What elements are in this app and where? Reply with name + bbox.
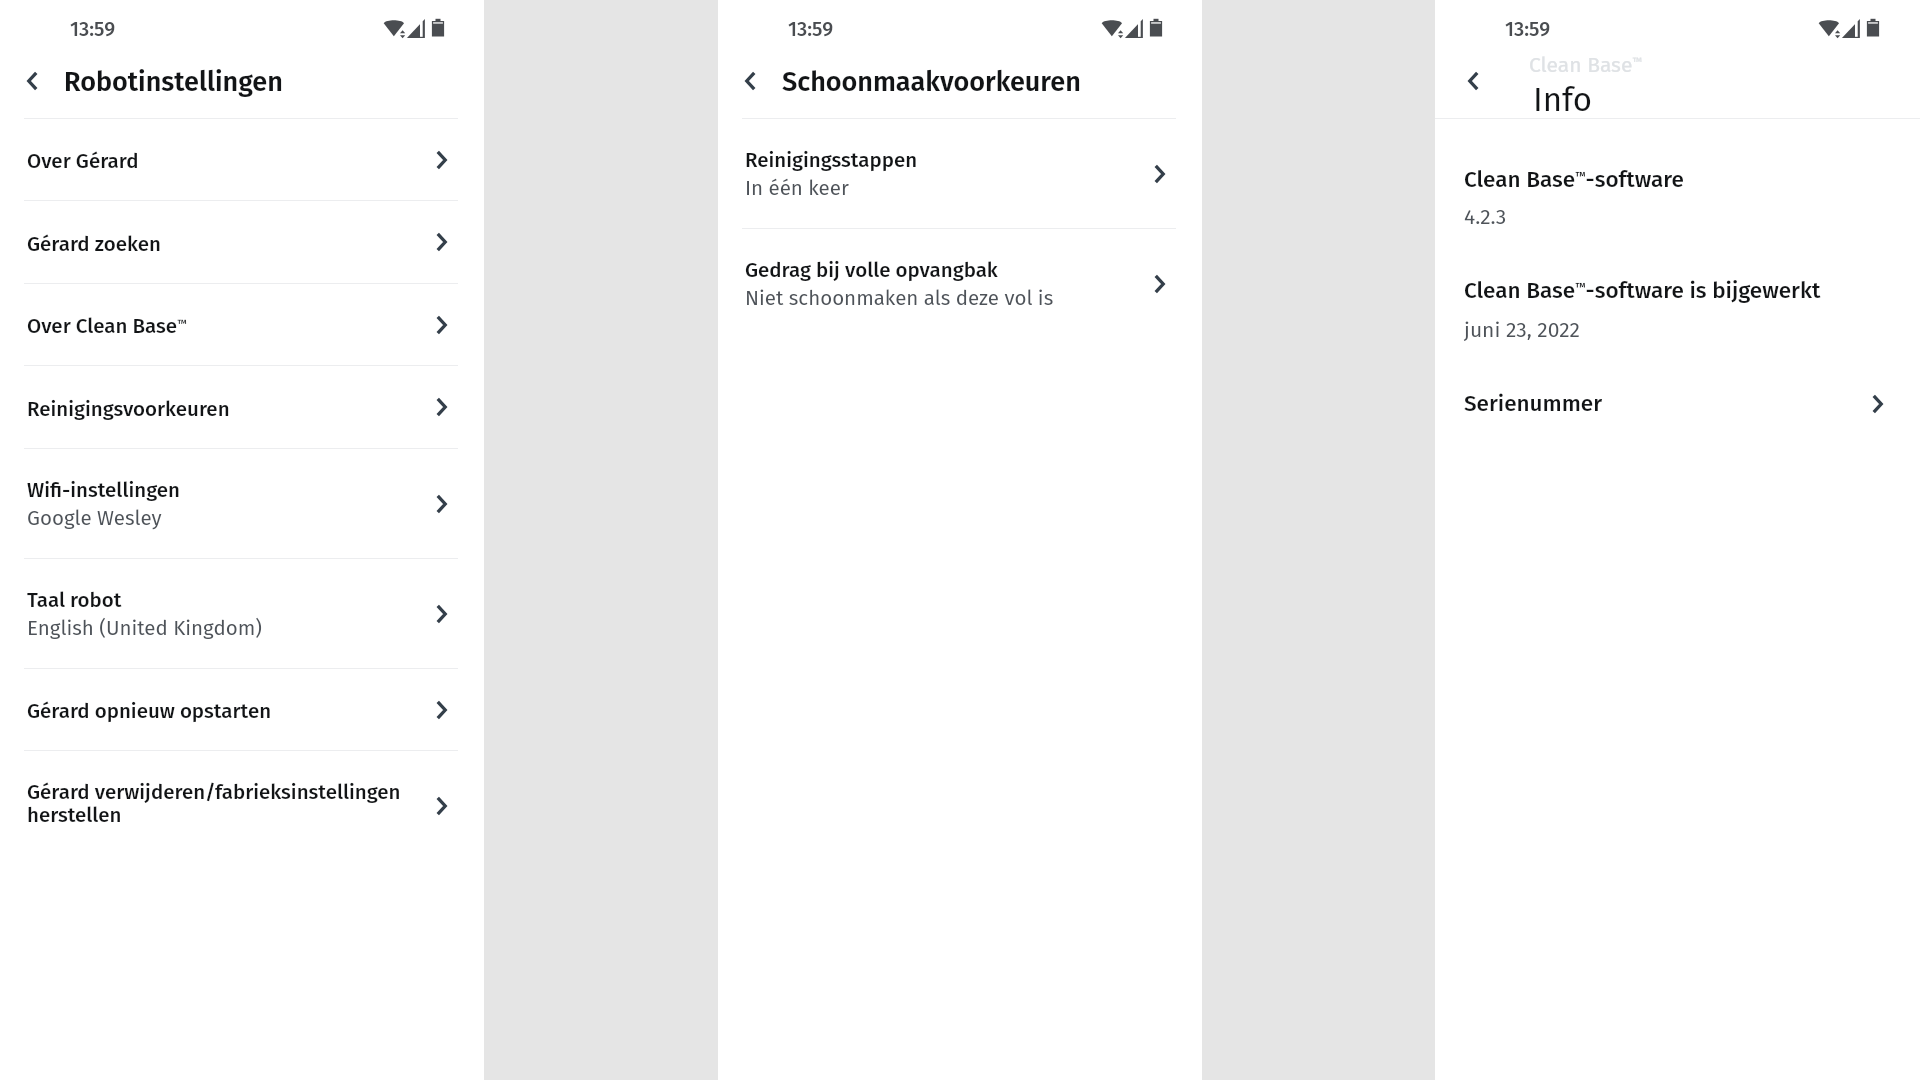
button[interactable]: Back [10, 59, 54, 103]
button[interactable]: Gérard opnieuw opstarten [0, 669, 484, 750]
button[interactable]: Gérard verwijderen/fabrieksinstellingen … [0, 751, 484, 860]
staticText: Gérard opnieuw opstarten [27, 700, 272, 723]
button[interactable]: Back [1451, 59, 1495, 103]
staticText: Clean Base™ [1529, 52, 1642, 77]
staticText: In één keer [745, 172, 849, 202]
staticText: Gedrag bij volle opvangbak [745, 259, 998, 282]
staticText: Robotinstellingen [64, 66, 283, 98]
button[interactable]: Wifi-instellingen [0, 449, 484, 558]
button[interactable]: Serienummer [1435, 377, 1920, 431]
staticText: juni 23, 2022 [1464, 317, 1580, 343]
button[interactable]: Taal robot [0, 559, 484, 668]
button[interactable]: Reinigingsvoorkeuren [0, 366, 484, 448]
staticText: Over Gérard [27, 150, 139, 173]
staticText: Wifi-instellingen [27, 479, 180, 502]
staticText: Clean Base™-software is bijgewerkt [1464, 264, 1821, 304]
staticText: 13:59 [1505, 17, 1551, 41]
staticText: Gérard zoeken [27, 233, 161, 256]
staticText: 13:59 [70, 17, 116, 41]
staticText: Clean Base™-software [1464, 153, 1684, 193]
staticText: Schoonmaakvoorkeuren [782, 66, 1081, 98]
button[interactable]: Gedrag bij volle opvangbak [718, 229, 1202, 338]
button[interactable]: Over Gérard [0, 119, 484, 200]
button[interactable]: Gérard zoeken [0, 201, 484, 283]
staticText: Taal robot [27, 589, 122, 612]
staticText: Reinigingsvoorkeuren [27, 398, 230, 421]
button[interactable]: Back [728, 59, 772, 103]
staticText: 4.2.3 [1464, 204, 1507, 230]
staticText: Niet schoonmaken als deze vol is [745, 282, 1054, 312]
staticText: Info [1533, 80, 1593, 120]
staticText: Over Clean Base™ [27, 303, 187, 338]
staticText: English (United Kingdom) [27, 612, 262, 642]
staticText: Gérard verwijderen/fabrieksinstellingen … [27, 781, 426, 827]
button[interactable]: Over Clean Base™ [0, 284, 484, 365]
staticText: Reinigingsstappen [745, 149, 918, 172]
staticText: Serienummer [1464, 391, 1872, 417]
button[interactable]: Reinigingsstappen [718, 119, 1202, 228]
staticText: Google Wesley [27, 502, 162, 532]
staticText: 13:59 [788, 17, 834, 41]
